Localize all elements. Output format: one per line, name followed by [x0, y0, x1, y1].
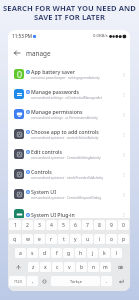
button[interactable]: More options	[119, 90, 128, 99]
button[interactable]: a	[15, 248, 26, 258]
button[interactable]: More options	[119, 150, 128, 159]
button[interactable]: Back	[12, 48, 22, 58]
button[interactable]: Manage passwords	[8, 84, 130, 104]
button[interactable]: w	[22, 234, 33, 244]
button[interactable]: k	[99, 248, 110, 258]
staticText: Türkçe	[70, 279, 82, 284]
button[interactable]: 0	[118, 220, 129, 230]
staticText: 9	[110, 222, 113, 229]
button[interactable]: v	[64, 262, 75, 272]
button[interactable]: u	[82, 234, 93, 244]
staticText: ,	[32, 278, 34, 285]
staticText: e	[38, 236, 41, 243]
button[interactable]: b	[76, 262, 87, 272]
staticText: com.miui.powerkeeper · settingsgreenActi…	[31, 76, 100, 80]
staticText: Choose app to add controls	[31, 128, 99, 135]
button[interactable]: Backspace	[112, 262, 129, 272]
button[interactable]: x	[40, 262, 51, 272]
button[interactable]: j	[87, 248, 98, 258]
button[interactable]: ?123	[9, 276, 26, 286]
staticText: com.android.systemui · ControlsEditingAc…	[31, 156, 101, 160]
button[interactable]: More options	[119, 110, 128, 119]
button[interactable]: n	[88, 262, 99, 272]
staticText: c	[56, 264, 59, 271]
button[interactable]: Controls	[8, 164, 130, 184]
staticText: w	[26, 236, 30, 243]
button[interactable]: Edit controls	[8, 144, 130, 164]
button[interactable]: h	[75, 248, 86, 258]
staticText: .	[106, 278, 108, 285]
staticText: o	[110, 236, 114, 243]
button[interactable]: Choose app to add controls	[8, 124, 130, 144]
button[interactable]: i	[94, 234, 105, 244]
staticText: manage	[26, 49, 51, 58]
staticText: 0.0KB/s	[93, 33, 108, 39]
button[interactable]: Shift	[9, 262, 27, 272]
button[interactable]: More options	[119, 170, 128, 179]
button[interactable]: ,	[27, 276, 38, 286]
button[interactable]: c	[52, 262, 63, 272]
button[interactable]: 5	[58, 220, 69, 230]
button[interactable]: 3	[34, 220, 45, 230]
staticText: h	[79, 250, 83, 257]
staticText: l	[116, 250, 118, 257]
button[interactable]: y	[70, 234, 81, 244]
staticText: com.android.settings · ui.PermissionsAct…	[31, 116, 98, 120]
staticText: z	[32, 264, 35, 271]
staticText: 8	[98, 222, 101, 229]
button[interactable]: 4	[46, 220, 57, 230]
staticText: p	[122, 236, 126, 243]
button[interactable]: App battery saver	[8, 64, 130, 84]
button[interactable]: o	[106, 234, 117, 244]
staticText: 7	[86, 222, 89, 229]
button[interactable]: .	[101, 276, 112, 286]
staticText: 11:53 PM	[12, 33, 32, 39]
staticText: Manage passwords	[31, 88, 79, 95]
button[interactable]: l	[111, 248, 122, 258]
button[interactable]: d	[39, 248, 50, 258]
button[interactable]: Türkçe	[51, 276, 100, 286]
staticText: System UI	[31, 188, 57, 195]
button[interactable]: Enter	[113, 276, 129, 286]
staticText: 5	[62, 222, 65, 229]
button[interactable]: f	[51, 248, 62, 258]
staticText: s	[31, 250, 34, 257]
button[interactable]: z	[28, 262, 39, 272]
button[interactable]: 8	[94, 220, 105, 230]
staticText: j	[92, 250, 94, 257]
button[interactable]: More options	[119, 70, 128, 79]
staticText: 6	[74, 222, 77, 229]
staticText: com.android.systemui · controlsSelectAct…	[31, 136, 99, 140]
button[interactable]: 2	[22, 220, 33, 230]
staticText: r	[50, 236, 53, 243]
button[interactable]: More options	[119, 210, 128, 219]
button[interactable]: q	[9, 234, 21, 244]
staticText: i	[99, 236, 101, 243]
staticText: 0	[122, 222, 125, 229]
button[interactable]: p	[118, 234, 129, 244]
staticText: t	[63, 236, 65, 243]
button[interactable]: More options	[119, 130, 128, 139]
staticText: b	[80, 264, 84, 271]
staticText: 2	[26, 222, 29, 229]
button[interactable]: Emoji	[39, 276, 50, 286]
button[interactable]: 9	[106, 220, 117, 230]
button[interactable]: System UI Plug-in	[8, 204, 130, 224]
button[interactable]: g	[63, 248, 74, 258]
staticText: q	[13, 236, 17, 243]
button[interactable]: s	[27, 248, 38, 258]
button[interactable]: e	[34, 234, 45, 244]
button[interactable]: m	[100, 262, 111, 272]
button[interactable]: r	[46, 234, 57, 244]
button[interactable]: Manage permissions	[8, 104, 130, 124]
button[interactable]: 6	[70, 220, 81, 230]
button[interactable]: Back	[8, 46, 130, 60]
button[interactable]: 1	[9, 220, 21, 230]
staticText: ?123	[14, 279, 22, 284]
staticText: 4	[50, 222, 53, 229]
button[interactable]: t	[58, 234, 69, 244]
staticText: 3	[38, 222, 41, 229]
button[interactable]: System UI	[8, 184, 130, 204]
button[interactable]: 7	[82, 220, 93, 230]
button[interactable]: More options	[119, 190, 128, 199]
